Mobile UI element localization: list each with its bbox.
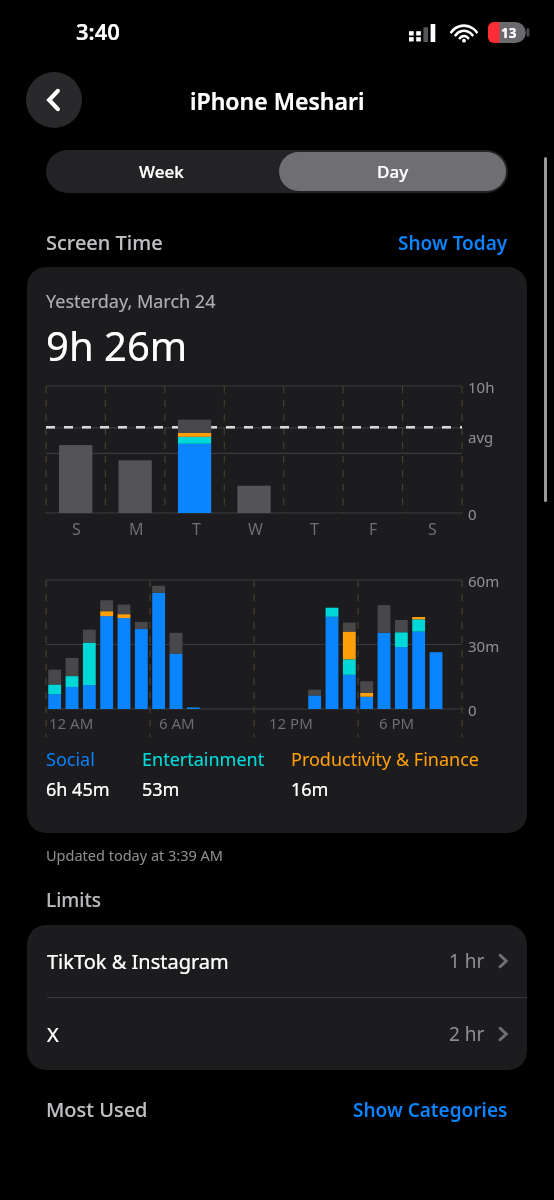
- staticText: 53m: [142, 777, 180, 802]
- staticText: TikTok & Instagram: [47, 948, 229, 975]
- staticText: 30m: [468, 636, 500, 656]
- staticText: Yesterday, March 24: [46, 289, 216, 314]
- button[interactable]: TikTok & Instagram: [27, 925, 527, 998]
- staticText: 0: [468, 504, 477, 524]
- staticText: 60m: [468, 571, 500, 591]
- staticText: 1 hr: [449, 948, 485, 974]
- staticText: T: [192, 518, 201, 540]
- staticText: Limits: [46, 887, 101, 913]
- staticText: T: [310, 518, 319, 540]
- staticText: 12 AM: [49, 713, 94, 733]
- staticText: Entertainment: [142, 747, 265, 772]
- staticText: Updated today at 3:39 AM: [46, 845, 223, 865]
- staticText: S: [428, 518, 437, 540]
- staticText: Week: [139, 160, 184, 183]
- staticText: 13: [501, 24, 517, 42]
- button[interactable]: X: [27, 998, 527, 1070]
- staticText: X: [47, 1021, 59, 1048]
- button[interactable]: Week: [46, 150, 277, 193]
- staticText: Productivity & Finance: [291, 747, 479, 772]
- staticText: 6 PM: [379, 713, 415, 733]
- staticText: 16m: [291, 777, 329, 802]
- staticText: Most Used: [46, 1096, 148, 1123]
- staticText: Social: [46, 747, 95, 772]
- staticText: 2 hr: [449, 1021, 485, 1047]
- staticText: W: [248, 518, 263, 540]
- staticText: iPhone Meshari: [190, 85, 365, 116]
- button[interactable]: Yesterday, March 24: [27, 267, 527, 833]
- staticText: 10h: [468, 377, 495, 397]
- button[interactable]: Day: [279, 152, 506, 191]
- staticText: S: [72, 518, 81, 540]
- button[interactable]: Show Categories: [353, 1097, 508, 1123]
- button[interactable]: Back: [26, 72, 82, 128]
- staticText: 6 AM: [159, 713, 195, 733]
- staticText: M: [129, 518, 144, 540]
- staticText: 9h 26m: [46, 318, 188, 372]
- staticText: 6h 45m: [46, 777, 110, 802]
- staticText: F: [369, 518, 378, 540]
- staticText: Screen Time: [46, 229, 163, 256]
- button[interactable]: Show Today: [398, 230, 508, 256]
- staticText: 3:40: [76, 16, 120, 46]
- staticText: avg: [468, 427, 494, 447]
- staticText: 12 PM: [269, 713, 313, 733]
- staticText: Day: [377, 160, 409, 183]
- staticText: 0: [468, 700, 477, 720]
- staticText: Show Categories: [353, 1097, 508, 1123]
- staticText: Show Today: [398, 230, 508, 256]
